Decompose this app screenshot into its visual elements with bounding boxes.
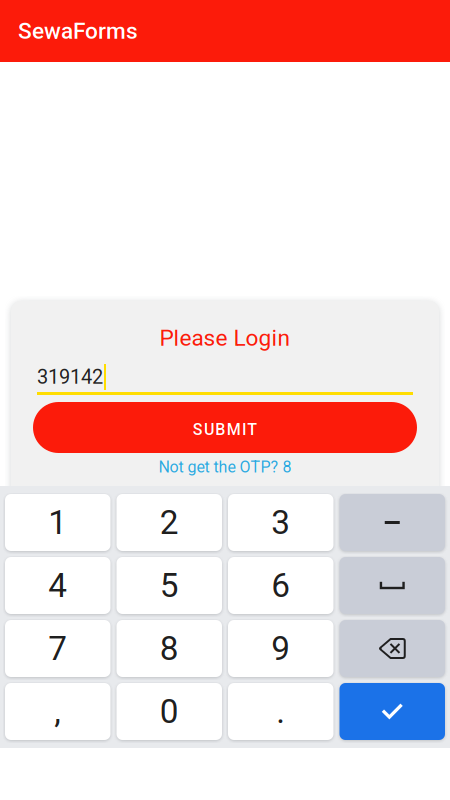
staticText: Please Login <box>159 325 290 351</box>
button[interactable]: Backspace <box>339 620 445 677</box>
button[interactable]: 1 <box>5 494 110 551</box>
button[interactable]: 2 <box>116 494 222 551</box>
button[interactable]: 5 <box>116 557 222 614</box>
staticText: 6 <box>271 566 290 605</box>
button[interactable]: 0 <box>116 683 222 740</box>
button[interactable]: , <box>5 683 110 740</box>
staticText: 7 <box>48 629 67 668</box>
button[interactable]: 8 <box>116 620 222 677</box>
staticText: 1 <box>48 503 67 542</box>
staticText: . <box>276 692 285 731</box>
button[interactable]: SUBMIT <box>33 402 417 453</box>
button[interactable]: 4 <box>5 557 110 614</box>
button[interactable]: . <box>228 683 333 740</box>
staticText: 319142 <box>37 365 103 389</box>
staticText: 5 <box>160 566 179 605</box>
button[interactable]: Space <box>339 557 445 614</box>
staticText: 4 <box>48 566 67 605</box>
button[interactable]: Minus <box>339 494 445 551</box>
button[interactable]: 7 <box>5 620 110 677</box>
button[interactable]: 6 <box>228 557 333 614</box>
staticText: Not get the OTP? 8 <box>158 458 291 476</box>
button[interactable]: Enter <box>339 683 445 740</box>
staticText: , <box>54 692 61 731</box>
button[interactable]: 9 <box>228 620 333 677</box>
button[interactable]: OTP code field <box>37 365 413 395</box>
staticText: SUBMIT <box>193 420 257 439</box>
button[interactable]: 3 <box>228 494 333 551</box>
button[interactable]: Not get the OTP? 8 <box>11 458 439 476</box>
staticText: 3 <box>271 503 290 542</box>
staticText: SewaForms <box>18 18 138 44</box>
staticText: 2 <box>160 503 179 542</box>
staticText: 9 <box>271 629 290 668</box>
staticText: 8 <box>160 629 179 668</box>
staticText: 0 <box>160 692 179 731</box>
